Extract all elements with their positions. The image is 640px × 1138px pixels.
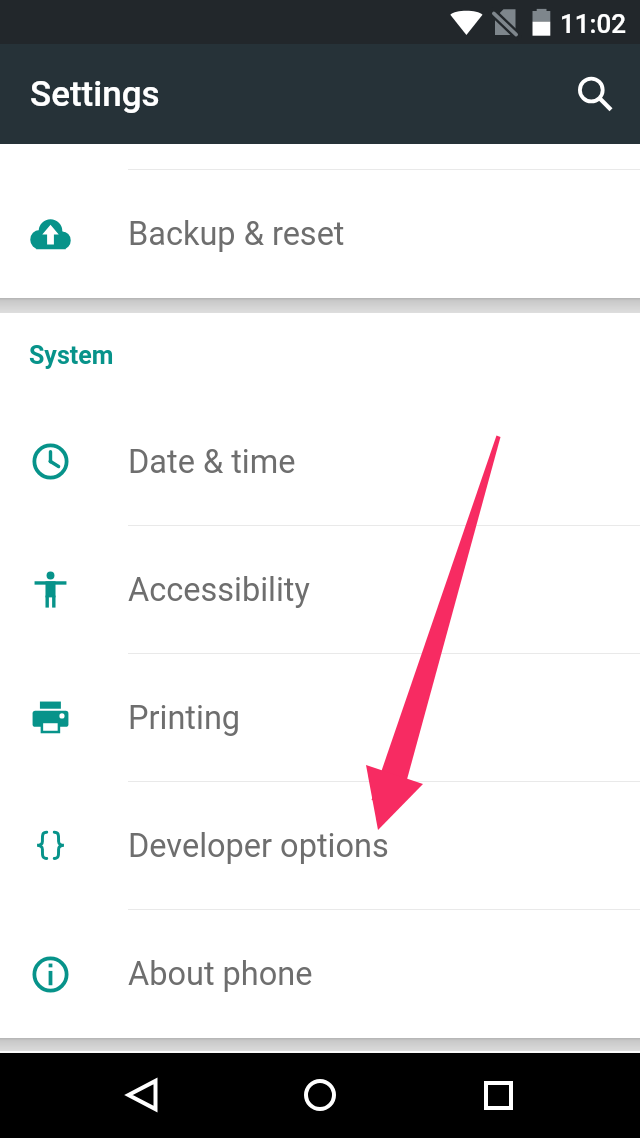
staticText: Settings [30, 74, 160, 115]
button[interactable]: Accessibility [0, 526, 640, 653]
staticText: About phone [128, 955, 313, 993]
staticText: Printing [128, 699, 241, 737]
staticText: Accessibility [128, 571, 310, 609]
button[interactable]: Date & time [0, 398, 640, 525]
staticText: System [29, 341, 114, 370]
staticText: Developer options [128, 827, 389, 865]
button[interactable]: Search [562, 58, 634, 130]
button[interactable]: Back [106, 1059, 178, 1131]
button[interactable]: Developer options [0, 782, 640, 909]
staticText: 11:02 [560, 9, 627, 39]
staticText: Date & time [128, 443, 296, 481]
button[interactable]: Home [284, 1059, 356, 1131]
button[interactable]: Backup & reset [0, 170, 640, 298]
staticText: Backup & reset [128, 215, 345, 253]
button[interactable]: Printing [0, 654, 640, 781]
button[interactable]: Recents [462, 1059, 534, 1131]
button[interactable]: About phone [0, 910, 640, 1038]
